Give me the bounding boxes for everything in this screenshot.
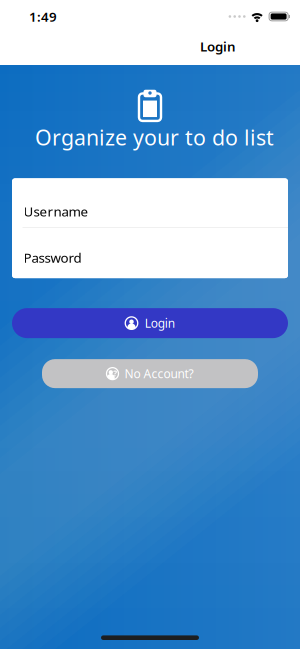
staticText: 1:49 [29, 8, 57, 25]
staticText: No Account? [124, 366, 193, 382]
staticText: ? [113, 368, 117, 379]
button[interactable]: Login [12, 308, 288, 338]
staticText: Username [23, 202, 88, 220]
staticText: Login [145, 315, 175, 331]
staticText: Organize your to do list [35, 123, 274, 151]
button[interactable]: Username [12, 178, 288, 227]
staticText: Password [23, 249, 81, 266]
button[interactable]: Password [12, 228, 288, 278]
button[interactable]: ? [42, 359, 258, 388]
staticText: Login [200, 37, 236, 55]
